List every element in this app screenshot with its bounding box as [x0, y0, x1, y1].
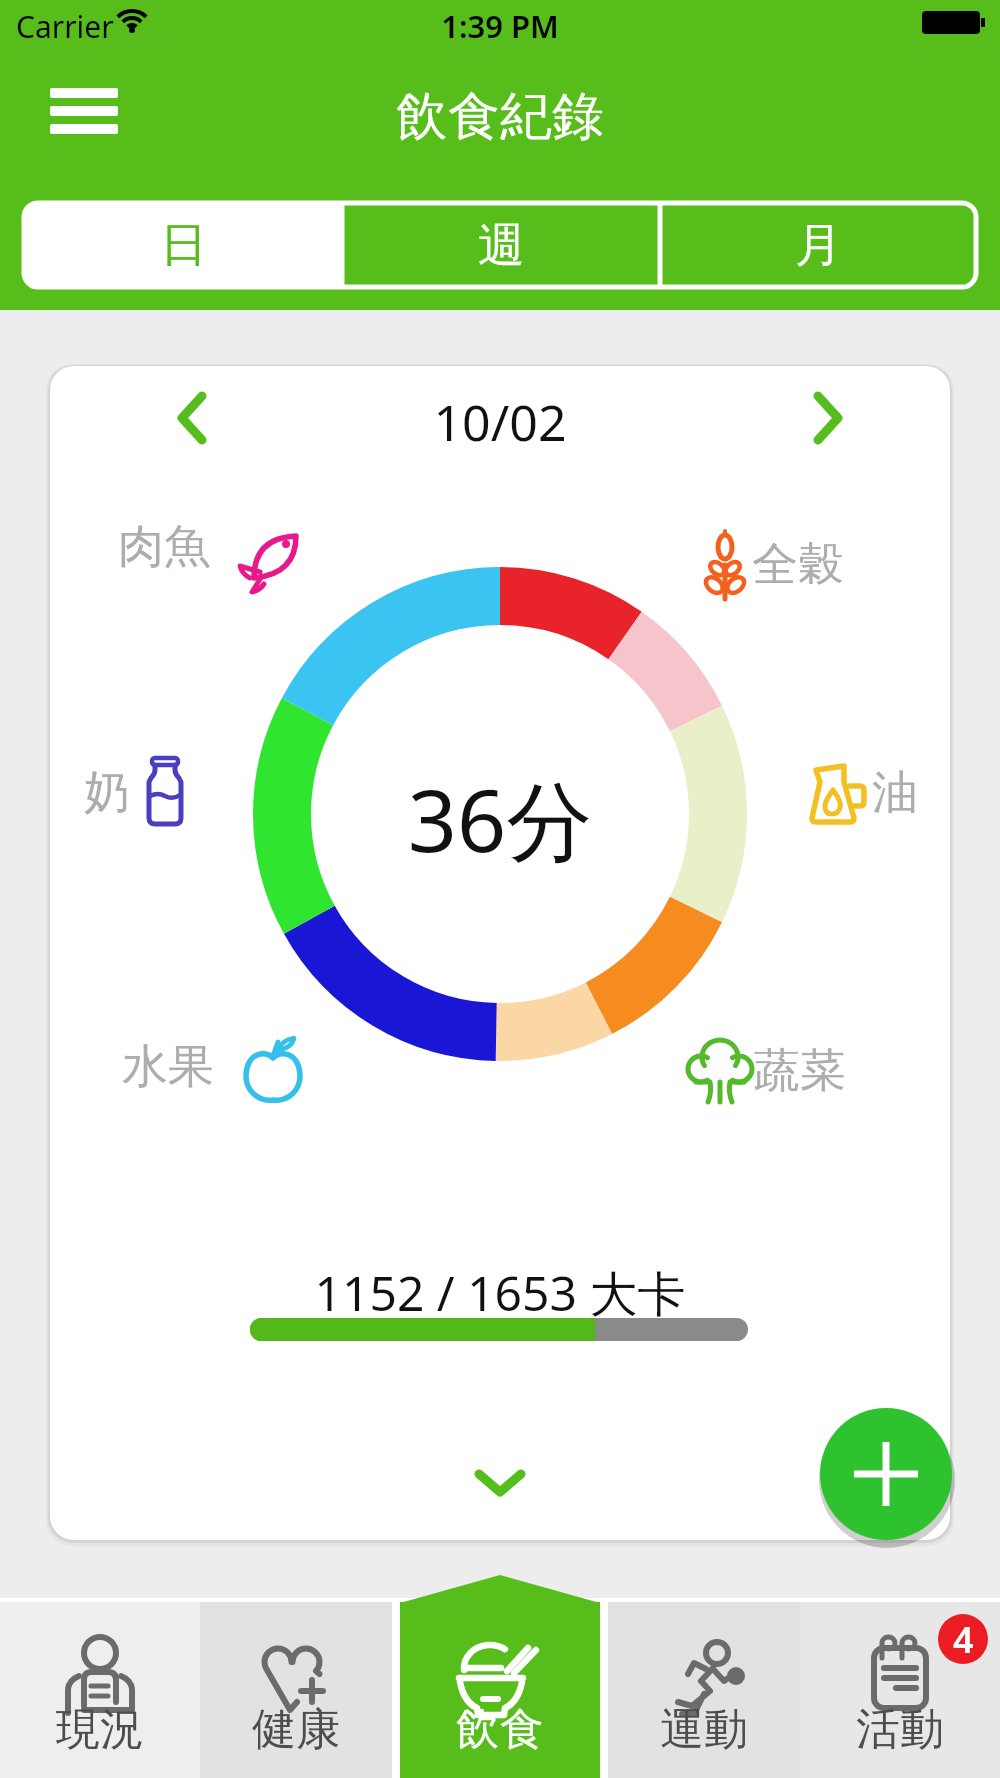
- button[interactable]: 活動: [800, 1602, 1000, 1778]
- button[interactable]: 運動: [608, 1602, 800, 1778]
- staticText: 36分: [0, 760, 1000, 877]
- staticText: 蔬菜: [754, 1042, 846, 1100]
- staticText: 現況: [0, 1702, 200, 1757]
- button[interactable]: [810, 392, 844, 444]
- staticText: 飲食: [400, 1702, 600, 1757]
- button[interactable]: 飲食: [400, 1602, 600, 1778]
- staticText: 肉魚: [118, 518, 210, 576]
- button[interactable]: 現況: [0, 1602, 200, 1778]
- staticText: Carrier: [16, 6, 114, 47]
- staticText: 運動: [608, 1702, 800, 1757]
- button[interactable]: [176, 392, 210, 444]
- staticText: 10/02: [0, 388, 1000, 456]
- button[interactable]: 日: [24, 203, 342, 287]
- staticText: 活動: [800, 1702, 1000, 1757]
- staticText: 月: [795, 216, 842, 275]
- button[interactable]: [50, 88, 118, 134]
- staticText: 水果: [122, 1038, 214, 1096]
- staticText: 日: [160, 216, 207, 275]
- staticText: 週: [478, 216, 525, 275]
- button[interactable]: [474, 1466, 526, 1502]
- staticText: 健康: [200, 1702, 392, 1757]
- button[interactable]: 月: [660, 203, 976, 287]
- staticText: 油: [872, 764, 918, 822]
- staticText: 全穀: [752, 536, 844, 594]
- staticText: 奶: [84, 764, 130, 822]
- staticText: 飲食紀錄: [0, 84, 1000, 150]
- button[interactable]: [820, 1408, 952, 1540]
- button[interactable]: 週: [342, 203, 660, 287]
- staticText: 1:39 PM: [0, 5, 1000, 47]
- button[interactable]: 健康: [200, 1602, 392, 1778]
- staticText: 4: [953, 1615, 974, 1664]
- staticText: 1152 / 1653 大卡: [0, 1260, 1000, 1326]
